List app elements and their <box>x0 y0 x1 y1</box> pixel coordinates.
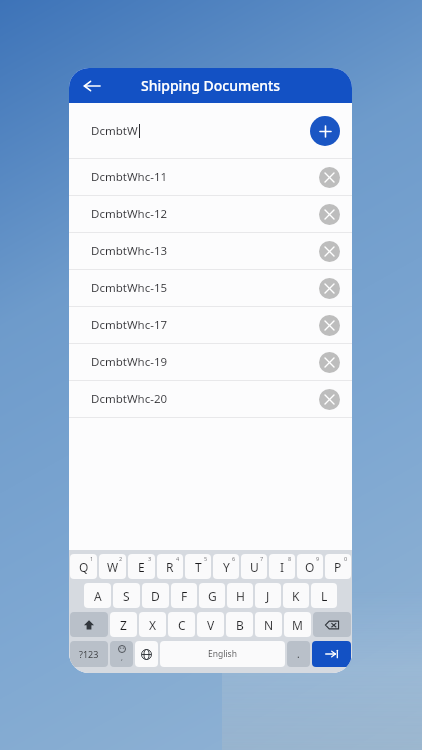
button[interactable]: Y <box>213 554 239 579</box>
button[interactable]: Emoji <box>110 641 133 667</box>
button[interactable]: K <box>283 583 309 608</box>
button[interactable]: DcmbtWhc-20 <box>69 381 352 418</box>
button[interactable]: English <box>160 641 285 667</box>
staticText: I <box>280 559 285 575</box>
staticText: DcmbtW <box>91 123 138 139</box>
button[interactable]: Language <box>135 641 158 667</box>
staticText: A <box>94 588 102 604</box>
button[interactable]: Add <box>310 116 340 146</box>
staticText: Shipping Documents <box>141 76 281 95</box>
staticText: G <box>208 588 217 604</box>
button[interactable]: Delete DcmbtWhc-20 <box>319 389 340 410</box>
staticText: DcmbtWhc-17 <box>91 317 168 333</box>
button[interactable]: M <box>284 612 311 637</box>
staticText: DcmbtWhc-15 <box>91 280 168 296</box>
staticText: T <box>195 559 202 575</box>
button[interactable]: C <box>168 612 195 637</box>
button[interactable]: Delete DcmbtWhc-19 <box>319 352 340 373</box>
button[interactable]: DcmbtWhc-19 <box>69 344 352 381</box>
button[interactable]: Delete DcmbtWhc-13 <box>319 241 340 262</box>
staticText: E <box>138 559 145 575</box>
button[interactable]: DcmbtWhc-11 <box>69 159 352 196</box>
button[interactable]: P <box>325 554 351 579</box>
button[interactable]: H <box>227 583 253 608</box>
button[interactable]: N <box>255 612 282 637</box>
button[interactable]: Next <box>312 641 351 667</box>
button[interactable]: J <box>255 583 281 608</box>
staticText: V <box>207 617 215 633</box>
button[interactable]: D <box>142 583 169 608</box>
staticText: 6 <box>232 555 236 562</box>
button[interactable]: ?123 <box>70 641 108 667</box>
button[interactable]: T <box>185 554 211 579</box>
staticText: L <box>321 588 328 604</box>
staticText: W <box>107 559 119 575</box>
button[interactable]: S <box>113 583 140 608</box>
staticText: R <box>166 559 174 575</box>
staticText: Y <box>223 559 230 575</box>
button[interactable]: I <box>269 554 295 579</box>
staticText: 4 <box>176 555 180 562</box>
button[interactable]: . <box>287 641 310 667</box>
button[interactable]: Delete DcmbtWhc-12 <box>319 204 340 225</box>
staticText: English <box>208 648 237 660</box>
staticText: 9 <box>316 555 320 562</box>
button[interactable]: Z <box>110 612 137 637</box>
staticText: D <box>151 588 160 604</box>
staticText: DcmbtWhc-11 <box>91 169 168 185</box>
button[interactable]: W <box>99 554 126 579</box>
button[interactable]: DcmbtWhc-13 <box>69 233 352 270</box>
button[interactable]: Delete DcmbtWhc-15 <box>319 278 340 299</box>
staticText: N <box>264 617 274 633</box>
staticText: M <box>292 617 303 633</box>
button[interactable]: U <box>241 554 267 579</box>
button[interactable]: DcmbtWhc-12 <box>69 196 352 233</box>
staticText: C <box>178 617 186 633</box>
staticText: F <box>181 588 188 604</box>
button[interactable]: L <box>311 583 337 608</box>
staticText: B <box>236 617 244 633</box>
button[interactable]: R <box>157 554 183 579</box>
staticText: DcmbtWhc-20 <box>91 391 168 407</box>
button[interactable]: E <box>128 554 155 579</box>
staticText: , <box>121 653 123 663</box>
staticText: DcmbtWhc-12 <box>91 206 168 222</box>
staticText: U <box>250 559 259 575</box>
staticText: J <box>266 588 270 604</box>
button[interactable]: Delete DcmbtWhc-11 <box>319 167 340 188</box>
staticText: H <box>236 588 245 604</box>
staticText: S <box>123 588 130 604</box>
staticText: DcmbtWhc-13 <box>91 243 168 259</box>
button[interactable]: O <box>297 554 323 579</box>
staticText: 1 <box>90 555 94 562</box>
staticText: O <box>305 559 315 575</box>
button[interactable]: Shift <box>70 612 108 637</box>
button[interactable]: G <box>199 583 225 608</box>
staticText: 5 <box>204 555 208 562</box>
staticText: Z <box>120 617 127 633</box>
staticText: P <box>334 559 342 575</box>
staticText: 7 <box>260 555 264 562</box>
button[interactable]: DcmbtWhc-15 <box>69 270 352 307</box>
button[interactable]: Delete DcmbtWhc-17 <box>319 315 340 336</box>
staticText: Q <box>79 559 89 575</box>
button[interactable]: Back <box>77 71 107 101</box>
button[interactable]: V <box>197 612 224 637</box>
button[interactable]: Backspace <box>313 612 351 637</box>
staticText: K <box>292 588 300 604</box>
staticText: 0 <box>344 555 348 562</box>
button[interactable]: B <box>226 612 253 637</box>
button[interactable]: X <box>139 612 166 637</box>
staticText: X <box>149 617 157 633</box>
button[interactable]: Q <box>70 554 97 579</box>
staticText: 8 <box>288 555 292 562</box>
button[interactable]: A <box>84 583 111 608</box>
staticText: . <box>297 647 300 661</box>
staticText: 2 <box>119 555 123 562</box>
staticText: DcmbtWhc-19 <box>91 354 168 370</box>
button[interactable]: DcmbtWhc-17 <box>69 307 352 344</box>
staticText: 3 <box>148 555 152 562</box>
button[interactable]: F <box>171 583 197 608</box>
staticText: ?123 <box>79 648 99 660</box>
